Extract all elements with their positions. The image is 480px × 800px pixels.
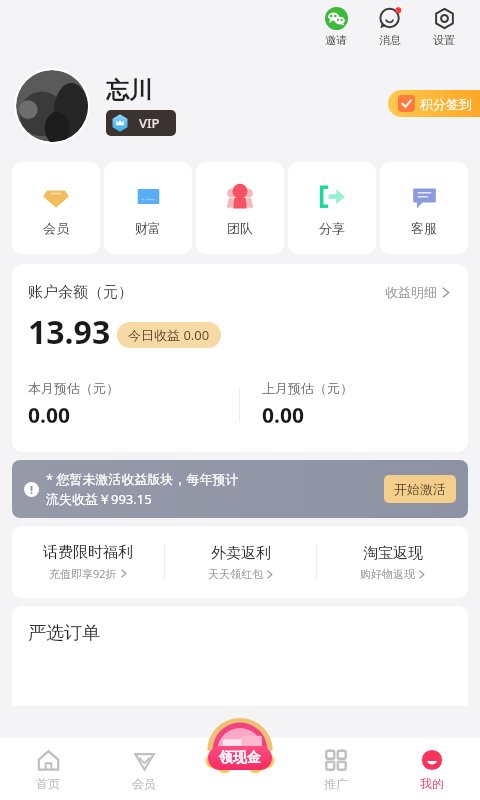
staticText: 分享 bbox=[319, 220, 345, 236]
staticText: 会员 bbox=[132, 776, 156, 791]
staticText: 设置 bbox=[433, 33, 455, 47]
button[interactable]: 首页 bbox=[0, 738, 96, 800]
other: 设置 bbox=[433, 7, 456, 30]
staticText: 邀请 bbox=[325, 33, 347, 47]
button[interactable]: 财富 bbox=[104, 162, 192, 254]
staticText: ! bbox=[30, 482, 34, 497]
button[interactable]: 话费限时福利 bbox=[12, 526, 164, 598]
staticText: 开始激活 bbox=[394, 481, 446, 497]
staticText: 天天领红包 bbox=[208, 567, 263, 581]
staticText: 外卖返利 bbox=[211, 544, 271, 563]
button[interactable]: 开始激活 bbox=[384, 475, 456, 503]
button[interactable]: 我的 bbox=[384, 738, 480, 800]
staticText: 购好物返现 bbox=[360, 567, 415, 581]
staticText: 推广 bbox=[324, 776, 348, 791]
button[interactable]: 外卖返利 bbox=[165, 526, 316, 598]
staticText: 领现金 bbox=[219, 749, 261, 767]
staticText: 消息 bbox=[379, 33, 401, 47]
button[interactable]: 推广 bbox=[288, 738, 384, 800]
button[interactable]: 会员 bbox=[12, 162, 100, 254]
button[interactable]: 会员 bbox=[96, 738, 192, 800]
button[interactable]: 邀请 bbox=[322, 6, 350, 47]
staticText: 话费限时福利 bbox=[43, 543, 133, 562]
button[interactable]: 积分签到 bbox=[388, 90, 480, 117]
staticText: 财富 bbox=[135, 220, 161, 236]
staticText: 本月预估（元） bbox=[28, 380, 119, 396]
other: 消息 bbox=[379, 7, 402, 30]
button[interactable]: 消息 bbox=[376, 6, 404, 47]
other: 邀请 bbox=[325, 7, 348, 30]
button[interactable]: 分享 bbox=[288, 162, 376, 254]
button[interactable]: VIP bbox=[106, 110, 176, 136]
button[interactable]: 收益明细 bbox=[381, 280, 454, 304]
staticText: 严选订单 bbox=[28, 622, 100, 645]
staticText: * 您暂未激活收益版块，每年预计 bbox=[46, 470, 239, 488]
staticText: 积分签到 bbox=[420, 96, 472, 112]
button[interactable]: 淘宝返现 bbox=[317, 526, 468, 598]
staticText: 客服 bbox=[411, 220, 437, 236]
staticText: 充值即享92折 bbox=[49, 566, 117, 581]
staticText: 0.00 bbox=[28, 401, 70, 430]
staticText: 淘宝返现 bbox=[363, 544, 423, 563]
staticText: 今日收益 0.00 bbox=[128, 326, 210, 344]
staticText: 流失收益￥993.15 bbox=[46, 490, 152, 508]
button[interactable]: 客服 bbox=[380, 162, 468, 254]
staticText: 团队 bbox=[227, 220, 253, 236]
staticText: 忘川 bbox=[106, 76, 152, 105]
staticText: 0.00 bbox=[262, 401, 304, 430]
staticText: 收益明细 bbox=[385, 284, 437, 300]
button[interactable]: 今日收益 0.00 bbox=[117, 322, 221, 348]
staticText: 13.93 bbox=[28, 310, 111, 354]
staticText: 账户余额（元） bbox=[28, 283, 133, 302]
staticText: 上月预估（元） bbox=[262, 380, 353, 396]
staticText: 会员 bbox=[43, 220, 69, 236]
staticText: 我的 bbox=[420, 776, 444, 791]
staticText: VIP bbox=[139, 114, 160, 132]
button[interactable]: 领现金 bbox=[201, 714, 279, 776]
staticText: 首页 bbox=[36, 776, 60, 791]
button[interactable]: 头像 bbox=[16, 70, 88, 142]
button[interactable]: 团队 bbox=[196, 162, 284, 254]
button[interactable]: 设置 bbox=[430, 6, 458, 47]
